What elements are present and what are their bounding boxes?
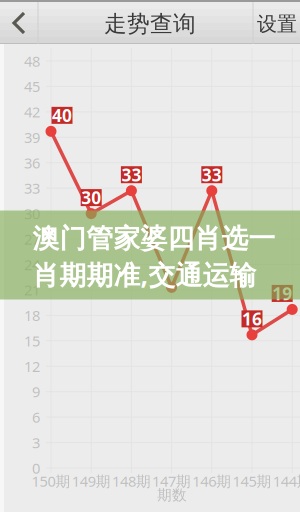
staticText: 30 [81, 186, 101, 209]
staticText: 33 [202, 163, 222, 186]
staticText: 9 [32, 382, 40, 401]
staticText: 144期 [273, 471, 300, 491]
staticText: 16 [242, 307, 262, 330]
staticText: 48 [24, 51, 40, 71]
button[interactable]: 设置 [253, 3, 300, 45]
staticText: 走势查询 [104, 10, 196, 38]
staticText: 149期 [72, 471, 111, 491]
staticText: 147期 [152, 471, 191, 491]
staticText: 39 [24, 127, 40, 147]
staticText: 40 [52, 104, 72, 127]
button[interactable]: Back [0, 0, 38, 44]
staticText: 33 [121, 163, 141, 186]
staticText: 18 [24, 306, 40, 325]
staticText: 19 [272, 282, 292, 305]
staticText: 146期 [192, 471, 231, 491]
staticText: 42 [24, 102, 40, 122]
staticText: 12 [24, 356, 40, 376]
staticText: 33 [24, 178, 40, 198]
staticText: 15 [24, 331, 40, 351]
staticText: 150期 [31, 471, 70, 491]
staticText: 24 [24, 255, 40, 274]
staticText: 27 [24, 229, 40, 249]
staticText: 3 [32, 433, 40, 452]
staticText: 6 [32, 407, 40, 427]
staticText: 30 [24, 204, 40, 223]
staticText: 145期 [232, 471, 271, 491]
staticText: 148期 [112, 471, 151, 491]
staticText: 21 [24, 280, 40, 300]
staticText: 36 [24, 153, 40, 172]
staticText: 澳门管家婆四肖选一 [32, 222, 275, 255]
staticText: 肖期期准,交通运输 [32, 257, 256, 292]
staticText: 期数 [157, 486, 187, 504]
staticText: 45 [24, 77, 40, 96]
staticText: 0 [32, 458, 40, 478]
staticText: 设置 [257, 12, 297, 36]
